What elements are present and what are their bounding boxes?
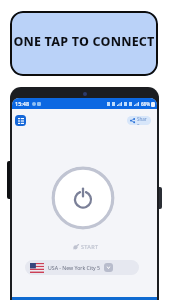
staticText: 15:48 xyxy=(15,100,30,107)
button[interactable]: App menu xyxy=(15,115,26,126)
button[interactable]: Share xyxy=(127,116,151,125)
button[interactable]: Connect xyxy=(51,166,115,230)
staticText: ONE TAP TO CONNECT xyxy=(13,33,155,50)
staticText: 68% xyxy=(141,101,150,107)
button[interactable]: START xyxy=(73,243,99,250)
staticText: START xyxy=(81,243,99,250)
staticText: USA - New York City 5 xyxy=(48,264,101,271)
button[interactable]: ONE TAP TO CONNECT xyxy=(10,11,158,76)
staticText: Share xyxy=(137,116,148,125)
button[interactable]: USA - New York City 5 xyxy=(25,260,139,275)
